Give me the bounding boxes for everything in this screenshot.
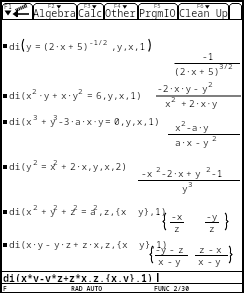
staticText: 3 xyxy=(188,179,193,189)
staticText: y xyxy=(215,255,221,268)
staticText: y xyxy=(203,136,209,149)
staticText: 5) xyxy=(208,65,220,78)
staticText: (2·x xyxy=(174,65,197,78)
staticText: + xyxy=(186,167,192,180)
staticText: 2 xyxy=(156,164,161,174)
staticText: + xyxy=(41,115,47,128)
staticText: -x xyxy=(171,210,183,223)
staticText: a·x xyxy=(175,136,193,149)
staticText: F6 xyxy=(197,2,204,10)
staticText: + xyxy=(68,40,74,53)
staticText: -3·a·x·y xyxy=(58,115,104,128)
staticText: 2 xyxy=(53,157,58,167)
staticText: - xyxy=(207,255,213,268)
staticText: + xyxy=(181,97,187,110)
staticText: -1 xyxy=(211,167,223,180)
staticText: a xyxy=(90,205,96,218)
button[interactable]: F6 xyxy=(178,0,229,20)
button[interactable]: F3 xyxy=(77,0,104,20)
staticText: x xyxy=(165,97,171,110)
staticText: 2·x·y xyxy=(189,97,218,110)
staticText: z xyxy=(174,222,180,235)
staticText: 2 xyxy=(93,202,98,212)
staticText: di(x xyxy=(9,115,32,128)
staticText: = xyxy=(41,160,47,173)
staticText: 2 xyxy=(208,79,213,89)
staticText: F3 xyxy=(84,2,91,10)
staticText: + xyxy=(61,160,67,173)
staticText: F4 xyxy=(114,2,121,10)
staticText: -y xyxy=(206,210,218,223)
staticText: 2 xyxy=(212,133,217,143)
staticText: 2·x,y,x,2) xyxy=(70,160,128,173)
staticText: z xyxy=(178,243,184,256)
staticText: di(x xyxy=(9,89,32,102)
staticText: 2 xyxy=(33,202,38,212)
staticText: di(y xyxy=(9,160,32,173)
staticText: 3 xyxy=(33,112,38,122)
staticText: ·y xyxy=(38,89,50,102)
staticText: - xyxy=(167,255,173,268)
staticText: F1 xyxy=(4,2,12,11)
staticText: y xyxy=(50,115,56,128)
button[interactable]: Tools menu xyxy=(2,2,33,20)
button[interactable]: F2 xyxy=(33,0,77,20)
staticText: - xyxy=(195,136,201,149)
staticText: + xyxy=(41,205,47,218)
staticText: y xyxy=(182,182,188,195)
staticText: ,z,{x y},1) xyxy=(98,205,167,218)
staticText: = xyxy=(87,89,93,102)
staticText: = xyxy=(81,205,87,218)
staticText: x xyxy=(175,121,181,134)
staticText: x xyxy=(50,160,56,173)
staticText: 3/2 xyxy=(219,61,233,71)
staticText: di(x*y-y*z+z*x,z,{x,y},1) xyxy=(3,271,153,282)
staticText: = xyxy=(35,40,41,53)
staticText: + xyxy=(52,89,58,102)
staticText: - xyxy=(208,243,214,256)
staticText: di(x xyxy=(9,205,32,218)
staticText: 2 xyxy=(53,202,58,212)
staticText: y xyxy=(175,255,181,268)
staticText: -x xyxy=(141,167,153,180)
staticText: Algebra xyxy=(33,6,76,20)
staticText: y xyxy=(26,40,32,53)
staticText: 2 xyxy=(78,86,83,96)
staticText: -1 xyxy=(202,50,214,63)
staticText: z·x,z,{x y},1) xyxy=(82,238,168,251)
staticText: z xyxy=(70,205,76,218)
staticText: F2 xyxy=(48,2,55,10)
staticText: PrgmIO xyxy=(139,6,176,20)
staticText: -a·y xyxy=(186,121,209,134)
staticText: -y xyxy=(155,243,167,256)
staticText: F5 xyxy=(154,2,161,10)
staticText: + xyxy=(61,205,67,218)
staticText: 2 xyxy=(171,94,176,104)
staticText: 2 xyxy=(32,86,37,96)
button[interactable]: F4 xyxy=(104,0,138,20)
staticText: + xyxy=(73,238,79,251)
staticText: y xyxy=(202,82,208,95)
staticText: - xyxy=(169,243,175,256)
staticText: y xyxy=(50,205,56,218)
staticText: F xyxy=(3,284,7,293)
staticText: ,y,x,1 xyxy=(111,40,146,53)
staticText: 2 xyxy=(73,202,78,212)
staticText: = xyxy=(105,115,111,128)
staticText: z xyxy=(209,222,215,235)
staticText: -1/2 xyxy=(89,37,108,47)
staticText: + xyxy=(199,65,205,78)
staticText: Calc xyxy=(78,6,103,20)
button[interactable]: F5 xyxy=(138,0,178,20)
staticText: Other xyxy=(105,6,136,20)
staticText: di xyxy=(9,40,21,53)
staticText: - xyxy=(45,238,51,251)
staticText: x·y xyxy=(61,89,79,102)
staticText: 3 xyxy=(53,112,58,122)
staticText: x xyxy=(158,255,164,268)
staticText: y xyxy=(195,167,201,180)
staticText: FUNC 2/30 xyxy=(154,284,190,293)
button[interactable]: di(x*y-y*z+z*x,z,{x,y},1) xyxy=(2,272,242,283)
staticText: - xyxy=(193,82,199,95)
staticText: 2 xyxy=(33,157,38,167)
